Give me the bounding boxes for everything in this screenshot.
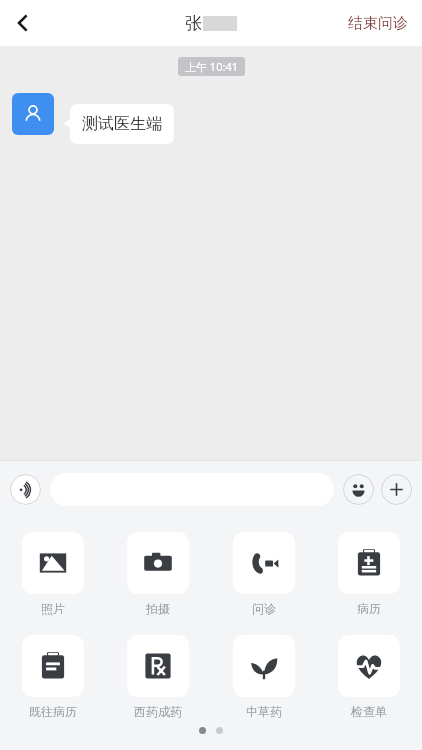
staticText: 检查单 — [351, 704, 387, 719]
button[interactable]: 照片 — [13, 532, 93, 616]
button[interactable]: 既往病历 — [13, 635, 93, 719]
button[interactable]: Avatar — [12, 93, 54, 135]
staticText: 拍摄 — [146, 601, 170, 616]
button[interactable]: 中草药 — [224, 635, 304, 719]
button[interactable]: 问诊 — [224, 532, 304, 616]
staticText: 结束问诊 — [348, 14, 408, 33]
button[interactable]: 测试医生端 — [70, 104, 174, 144]
button[interactable]: 检查单 — [329, 635, 409, 719]
button[interactable]: Emoji — [343, 474, 374, 505]
button[interactable]: 西药成药 — [118, 635, 198, 719]
staticText: 测试医生端 — [82, 114, 162, 134]
staticText: 照片 — [41, 601, 65, 616]
staticText: 上午 10:41 — [185, 59, 238, 74]
staticText: 病历 — [357, 601, 381, 616]
button[interactable]: 拍摄 — [118, 532, 198, 616]
staticText: 既往病历 — [29, 704, 77, 719]
staticText: 张 — [185, 13, 202, 34]
button[interactable]: Back — [0, 0, 46, 46]
staticText: 问诊 — [252, 601, 276, 616]
button[interactable]: Voice input — [10, 474, 41, 505]
staticText: 中草药 — [246, 704, 282, 719]
button[interactable]: 病历 — [329, 532, 409, 616]
button[interactable]: More options — [381, 474, 412, 505]
staticText: 西药成药 — [134, 704, 182, 719]
button[interactable]: 结束问诊 — [334, 6, 422, 41]
